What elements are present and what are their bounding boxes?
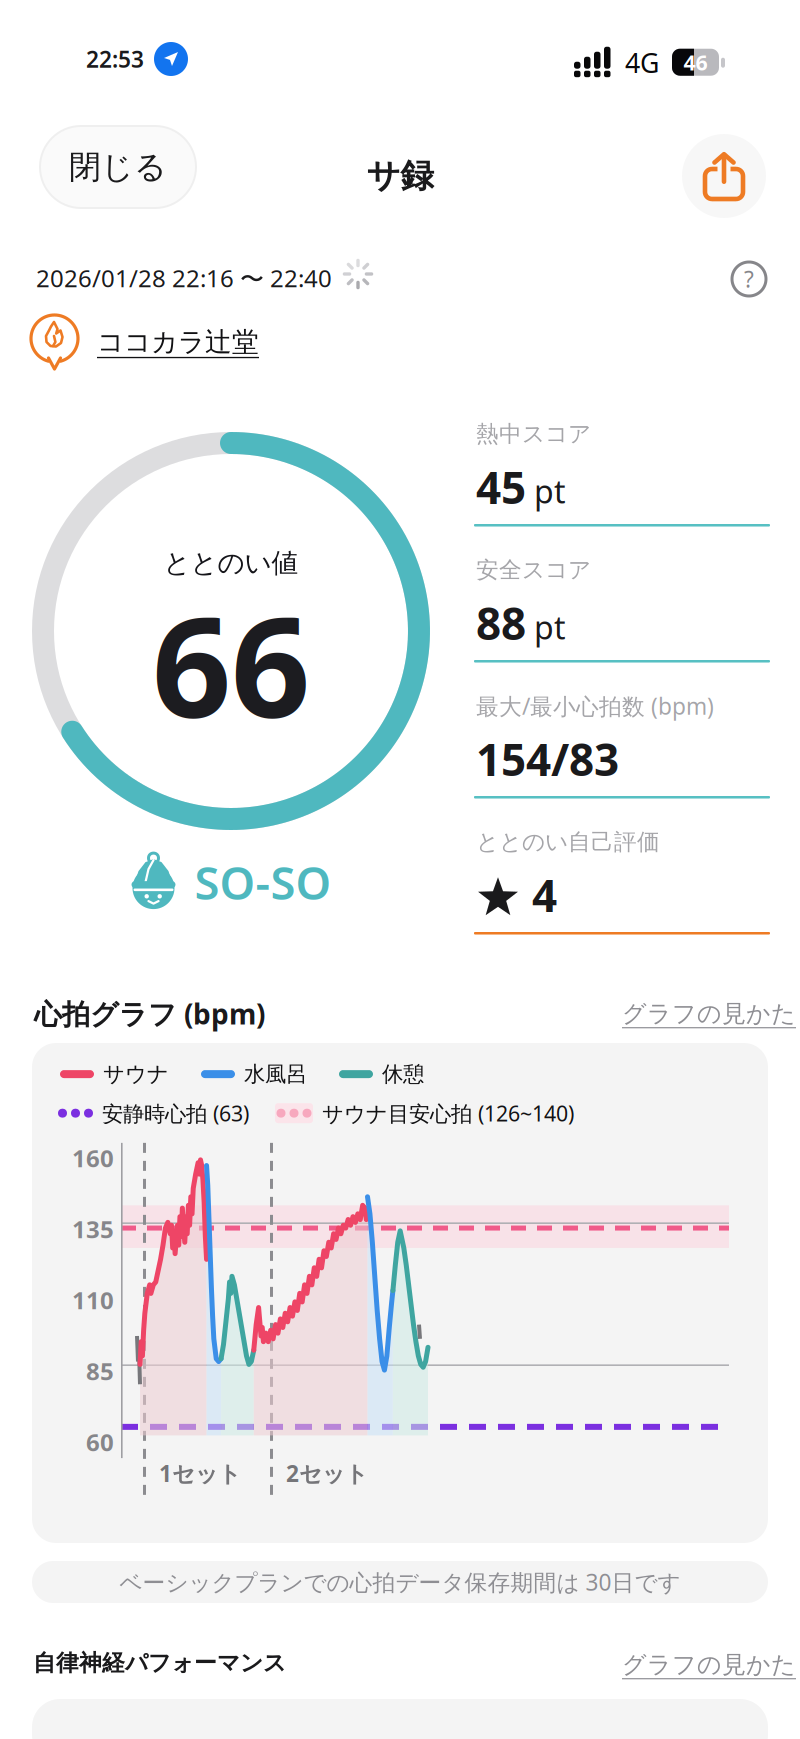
- staticText: 66: [152, 572, 310, 756]
- staticText: サウナ目安心拍 (126~140): [322, 1099, 574, 1127]
- staticText: 2セット: [286, 1458, 368, 1488]
- staticText: 心拍グラフ (bpm): [34, 995, 265, 1032]
- staticText: 自律神経パフォーマンス: [33, 1649, 286, 1677]
- staticText: ココカラ辻堂: [97, 326, 259, 358]
- staticText: 88: [476, 594, 526, 652]
- staticText: 4G: [625, 45, 659, 80]
- button[interactable]: グラフの見かた: [622, 1650, 796, 1679]
- button[interactable]: ココカラ辻堂: [30, 314, 259, 370]
- staticText: ととのい値: [163, 547, 298, 579]
- button[interactable]: Share: [682, 134, 766, 218]
- staticText: 4: [532, 866, 557, 924]
- staticText: ととのい自己評価: [476, 828, 660, 856]
- staticText: SO-SO: [194, 852, 331, 912]
- staticText: 1セット: [159, 1458, 241, 1488]
- staticText: 60: [86, 1426, 114, 1458]
- staticText: 熱中スコア: [476, 420, 591, 448]
- staticText: 安静時心拍 (63): [102, 1099, 249, 1127]
- staticText: 135: [72, 1213, 114, 1245]
- staticText: 110: [72, 1284, 114, 1316]
- staticText: 22:53: [86, 44, 144, 74]
- staticText: 最大/最小心拍数 (bpm): [476, 691, 714, 721]
- staticText: pt: [534, 606, 566, 648]
- staticText: サウナ: [103, 1061, 169, 1087]
- staticText: 安全スコア: [476, 556, 591, 584]
- staticText: 休憩: [382, 1061, 424, 1087]
- staticText: ベーシックプランでの心拍データ保存期間は 30日です: [119, 1567, 680, 1597]
- staticText: 45: [476, 458, 526, 516]
- button[interactable]: Help: [726, 256, 772, 302]
- staticText: 85: [86, 1355, 114, 1387]
- staticText: 2026/01/28 22:16 〜 22:40: [36, 262, 332, 294]
- staticText: pt: [534, 470, 566, 512]
- staticText: 閉じる: [69, 147, 167, 187]
- button[interactable]: グラフの見かた: [622, 999, 796, 1028]
- staticText: ?: [744, 264, 754, 294]
- staticText: 水風呂: [244, 1061, 307, 1087]
- staticText: サ録: [366, 155, 433, 196]
- staticText: グラフの見かた: [622, 1650, 796, 1679]
- staticText: 154/83: [476, 730, 619, 788]
- button[interactable]: 閉じる: [40, 126, 196, 208]
- staticText: 160: [72, 1142, 114, 1174]
- staticText: 46: [683, 48, 707, 76]
- staticText: グラフの見かた: [622, 999, 796, 1028]
